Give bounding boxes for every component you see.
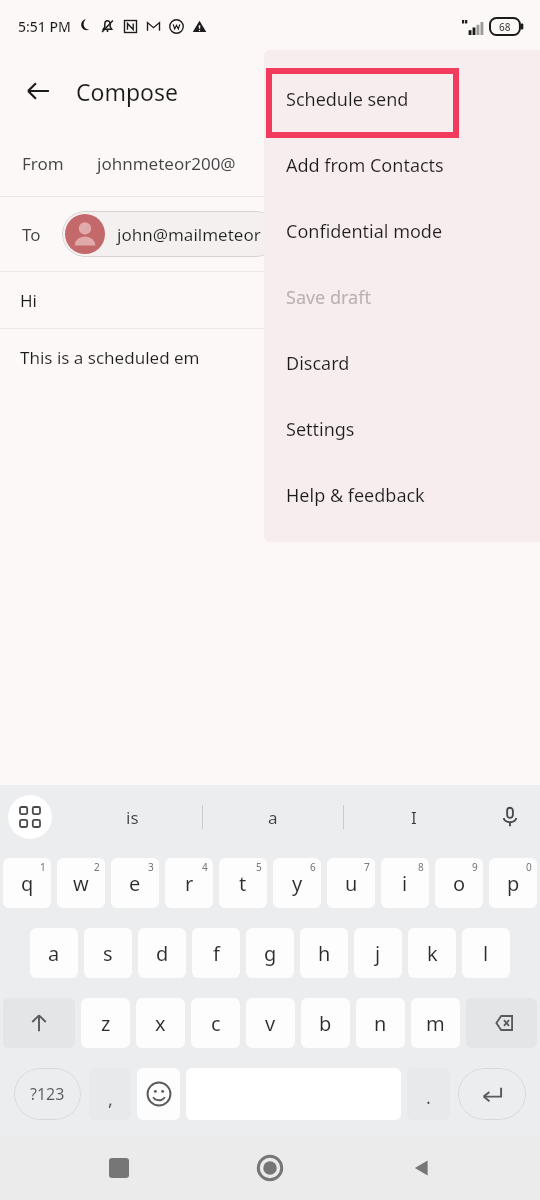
- button[interactable]: .: [407, 1068, 450, 1120]
- staticText: This is a scheduled em: [20, 346, 200, 369]
- staticText: z: [101, 1010, 111, 1037]
- staticText: 6: [310, 860, 316, 874]
- button[interactable]: t: [219, 858, 267, 908]
- button[interactable]: Schedule send: [264, 66, 540, 132]
- staticText: f: [213, 940, 220, 967]
- button[interactable]: Add from Contacts: [264, 132, 540, 198]
- button[interactable]: z: [81, 998, 130, 1048]
- staticText: p: [507, 870, 520, 897]
- staticText: w: [73, 870, 89, 897]
- staticText: 8: [418, 860, 424, 874]
- button[interactable]: a: [30, 928, 78, 978]
- staticText: b: [319, 1010, 332, 1037]
- button[interactable]: e: [111, 858, 159, 908]
- staticText: john@mailmeteor: [117, 223, 261, 246]
- button[interactable]: Voice input: [490, 797, 530, 837]
- staticText: Discard: [286, 351, 350, 376]
- button[interactable]: m: [411, 998, 460, 1048]
- staticText: h: [318, 940, 331, 967]
- button[interactable]: o: [435, 858, 483, 908]
- staticText: 4: [202, 860, 208, 874]
- staticText: To: [22, 223, 41, 246]
- button[interactable]: Back: [389, 1136, 453, 1200]
- button[interactable]: w: [57, 858, 105, 908]
- button[interactable]: is: [62, 790, 202, 844]
- button[interactable]: n: [356, 998, 405, 1048]
- staticText: 0: [526, 860, 532, 874]
- button[interactable]: c: [191, 998, 240, 1048]
- staticText: a: [48, 940, 60, 967]
- staticText: Add from Contacts: [286, 153, 444, 178]
- staticText: ?123: [30, 1083, 65, 1105]
- button[interactable]: I: [344, 790, 484, 844]
- staticText: Hi: [20, 289, 37, 312]
- staticText: q: [21, 870, 34, 897]
- staticText: Help & feedback: [286, 483, 425, 508]
- button[interactable]: y: [273, 858, 321, 908]
- staticText: Confidential mode: [286, 219, 443, 244]
- staticText: Compose: [76, 76, 179, 107]
- staticText: .: [426, 1085, 431, 1110]
- staticText: u: [345, 870, 358, 897]
- staticText: 1: [40, 860, 46, 874]
- button[interactable]: Backspace: [466, 998, 537, 1048]
- button[interactable]: Help & feedback: [264, 462, 540, 528]
- button[interactable]: Discard: [264, 330, 540, 396]
- staticText: i: [402, 870, 408, 897]
- staticText: 3: [148, 860, 154, 874]
- staticText: is: [126, 806, 139, 829]
- staticText: Schedule send: [286, 87, 409, 112]
- staticText: s: [103, 940, 113, 967]
- button[interactable]: john@mailmeteor: [62, 211, 279, 257]
- staticText: j: [375, 940, 381, 967]
- staticText: Save draft: [286, 285, 371, 310]
- staticText: 2: [94, 860, 100, 874]
- staticText: r: [185, 870, 194, 897]
- staticText: 5: [256, 860, 262, 874]
- button: Save draft: [264, 264, 540, 330]
- staticText: From: [22, 152, 64, 175]
- button[interactable]: u: [327, 858, 375, 908]
- button[interactable]: x: [136, 998, 185, 1048]
- staticText: v: [265, 1010, 276, 1037]
- button[interactable]: Back: [14, 67, 62, 115]
- button[interactable]: v: [246, 998, 295, 1048]
- staticText: n: [374, 1010, 387, 1037]
- staticText: 9: [472, 860, 478, 874]
- button[interactable]: j: [354, 928, 402, 978]
- button[interactable]: r: [165, 858, 213, 908]
- button[interactable]: h: [300, 928, 348, 978]
- staticText: e: [129, 870, 141, 897]
- button[interactable]: Emoji: [137, 1068, 180, 1120]
- button[interactable]: Settings: [264, 396, 540, 462]
- button[interactable]: f: [192, 928, 240, 978]
- staticText: t: [239, 870, 247, 897]
- staticText: a: [268, 806, 278, 829]
- staticText: l: [483, 940, 489, 967]
- button[interactable]: Shift: [3, 998, 75, 1048]
- button[interactable]: d: [138, 928, 186, 978]
- button[interactable]: p: [489, 858, 537, 908]
- staticText: g: [264, 940, 277, 967]
- button[interactable]: ,: [89, 1068, 131, 1120]
- staticText: y: [292, 870, 303, 897]
- button[interactable]: Confidential mode: [264, 198, 540, 264]
- button[interactable]: q: [3, 858, 51, 908]
- button[interactable]: i: [381, 858, 429, 908]
- button[interactable]: b: [301, 998, 350, 1048]
- button[interactable]: a: [203, 790, 343, 844]
- button[interactable]: s: [84, 928, 132, 978]
- button[interactable]: Recent apps: [87, 1136, 151, 1200]
- staticText: d: [156, 940, 169, 967]
- staticText: k: [427, 940, 438, 967]
- button[interactable]: l: [462, 928, 510, 978]
- button[interactable]: g: [246, 928, 294, 978]
- staticText: 68: [499, 20, 511, 34]
- button[interactable]: Keyboard toolbar: [8, 795, 52, 839]
- button[interactable]: Home: [238, 1136, 302, 1200]
- button[interactable]: ?123: [14, 1068, 81, 1120]
- button[interactable]: k: [408, 928, 456, 978]
- staticText: I: [411, 806, 417, 829]
- button[interactable]: Enter: [458, 1068, 526, 1120]
